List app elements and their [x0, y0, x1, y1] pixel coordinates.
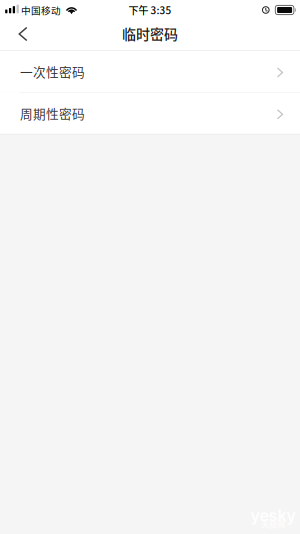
- staticText: 一次性密码: [20, 62, 85, 81]
- staticText: 下午 3:35: [128, 3, 171, 17]
- button[interactable]: Back: [3, 20, 43, 50]
- button[interactable]: 周期性密码: [0, 93, 300, 134]
- staticText: 临时密码: [122, 23, 178, 44]
- button[interactable]: 一次性密码: [0, 51, 300, 92]
- staticText: 周期性密码: [20, 104, 85, 122]
- staticText: yesky: [250, 506, 295, 525]
- staticText: 中国移动: [21, 3, 61, 17]
- staticText: 天极网: [261, 518, 285, 530]
